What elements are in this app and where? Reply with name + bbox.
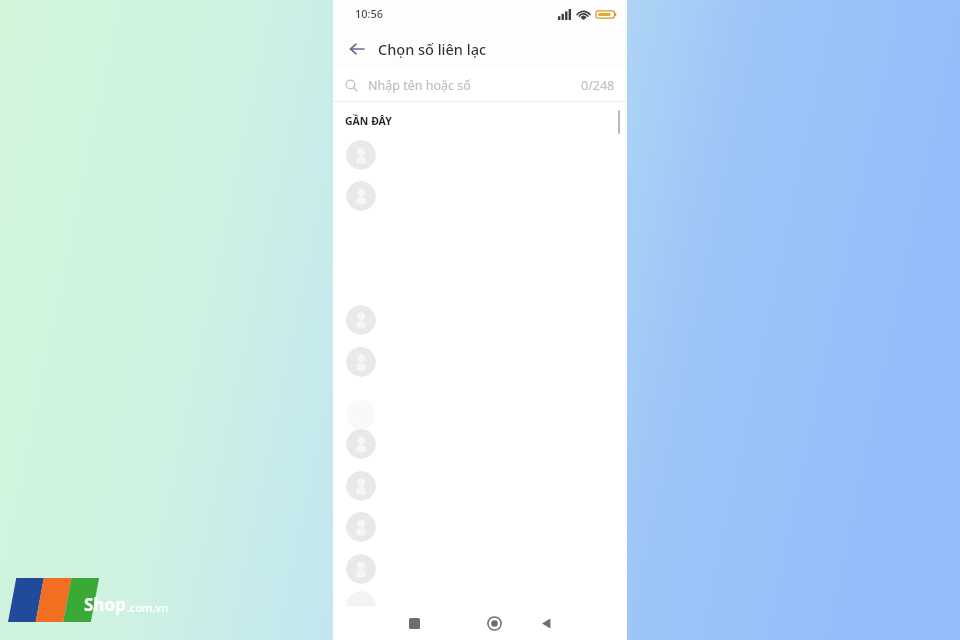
- button[interactable]: Contact: [346, 429, 376, 459]
- button[interactable]: Contact: [346, 554, 376, 584]
- staticText: GẦN ĐÂY: [345, 114, 392, 128]
- button[interactable]: Contact: [346, 305, 376, 335]
- button[interactable]: Recent apps: [399, 608, 429, 638]
- staticText: Chọn số liên lạc: [378, 39, 487, 59]
- button[interactable]: Contact: [346, 140, 376, 170]
- button[interactable]: Contact: [346, 471, 376, 501]
- staticText: 0/248: [581, 77, 615, 94]
- button[interactable]: Back: [531, 608, 561, 638]
- button[interactable]: Back: [342, 34, 372, 64]
- button[interactable]: Home: [479, 608, 509, 638]
- button[interactable]: Nhập tên hoặc số: [333, 69, 627, 101]
- button[interactable]: Contact: [346, 591, 376, 621]
- staticText: Nhập tên hoặc số: [368, 77, 581, 94]
- button[interactable]: Contact: [346, 347, 376, 377]
- staticText: .com.vn: [127, 600, 169, 615]
- button[interactable]: Contact: [346, 512, 376, 542]
- staticText: Shop: [84, 593, 126, 616]
- button[interactable]: Contact: [346, 181, 376, 211]
- staticText: 10:56: [355, 6, 384, 21]
